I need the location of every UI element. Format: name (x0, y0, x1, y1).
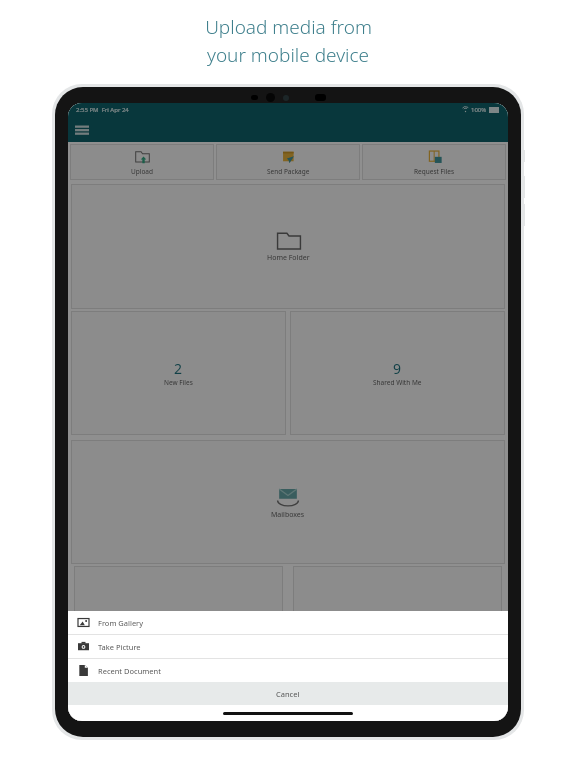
staticText: 2 (174, 359, 183, 378)
staticText: your mobile device (207, 42, 369, 68)
staticText: 2:55 PM Fri Apr 24 (76, 106, 129, 114)
button[interactable]: Send Package (216, 144, 360, 180)
button[interactable]: Menu (74, 122, 90, 138)
staticText: Take Picture (98, 642, 141, 652)
button[interactable]: Home Folder (71, 184, 505, 309)
staticText: Send Package (267, 167, 310, 176)
button[interactable]: Upload (70, 144, 214, 180)
staticText: From Gallery (98, 618, 144, 628)
staticText: 100% (471, 106, 487, 114)
button[interactable]: 2 (71, 311, 286, 435)
staticText: New Files (164, 378, 193, 387)
staticText: Mailboxes (271, 510, 305, 520)
button[interactable]: Take Picture (68, 635, 508, 658)
button[interactable]: Cancel (68, 682, 508, 705)
button[interactable] (293, 566, 502, 721)
button[interactable] (74, 566, 283, 721)
button[interactable]: Mailboxes (71, 440, 505, 564)
staticText: Home Folder (267, 253, 310, 263)
staticText: Upload (131, 167, 154, 176)
staticText: Shared With Me (373, 378, 422, 387)
button[interactable]: 9 (290, 311, 505, 435)
staticText: Cancel (276, 689, 300, 699)
button[interactable]: Recent Document (68, 659, 508, 682)
button[interactable]: From Gallery (68, 611, 508, 634)
staticText: Recent Document (98, 666, 161, 676)
button[interactable]: Request Files (362, 144, 506, 180)
staticText: Upload media from (205, 14, 372, 40)
staticText: Request Files (414, 167, 455, 176)
staticText: 9 (393, 359, 402, 378)
